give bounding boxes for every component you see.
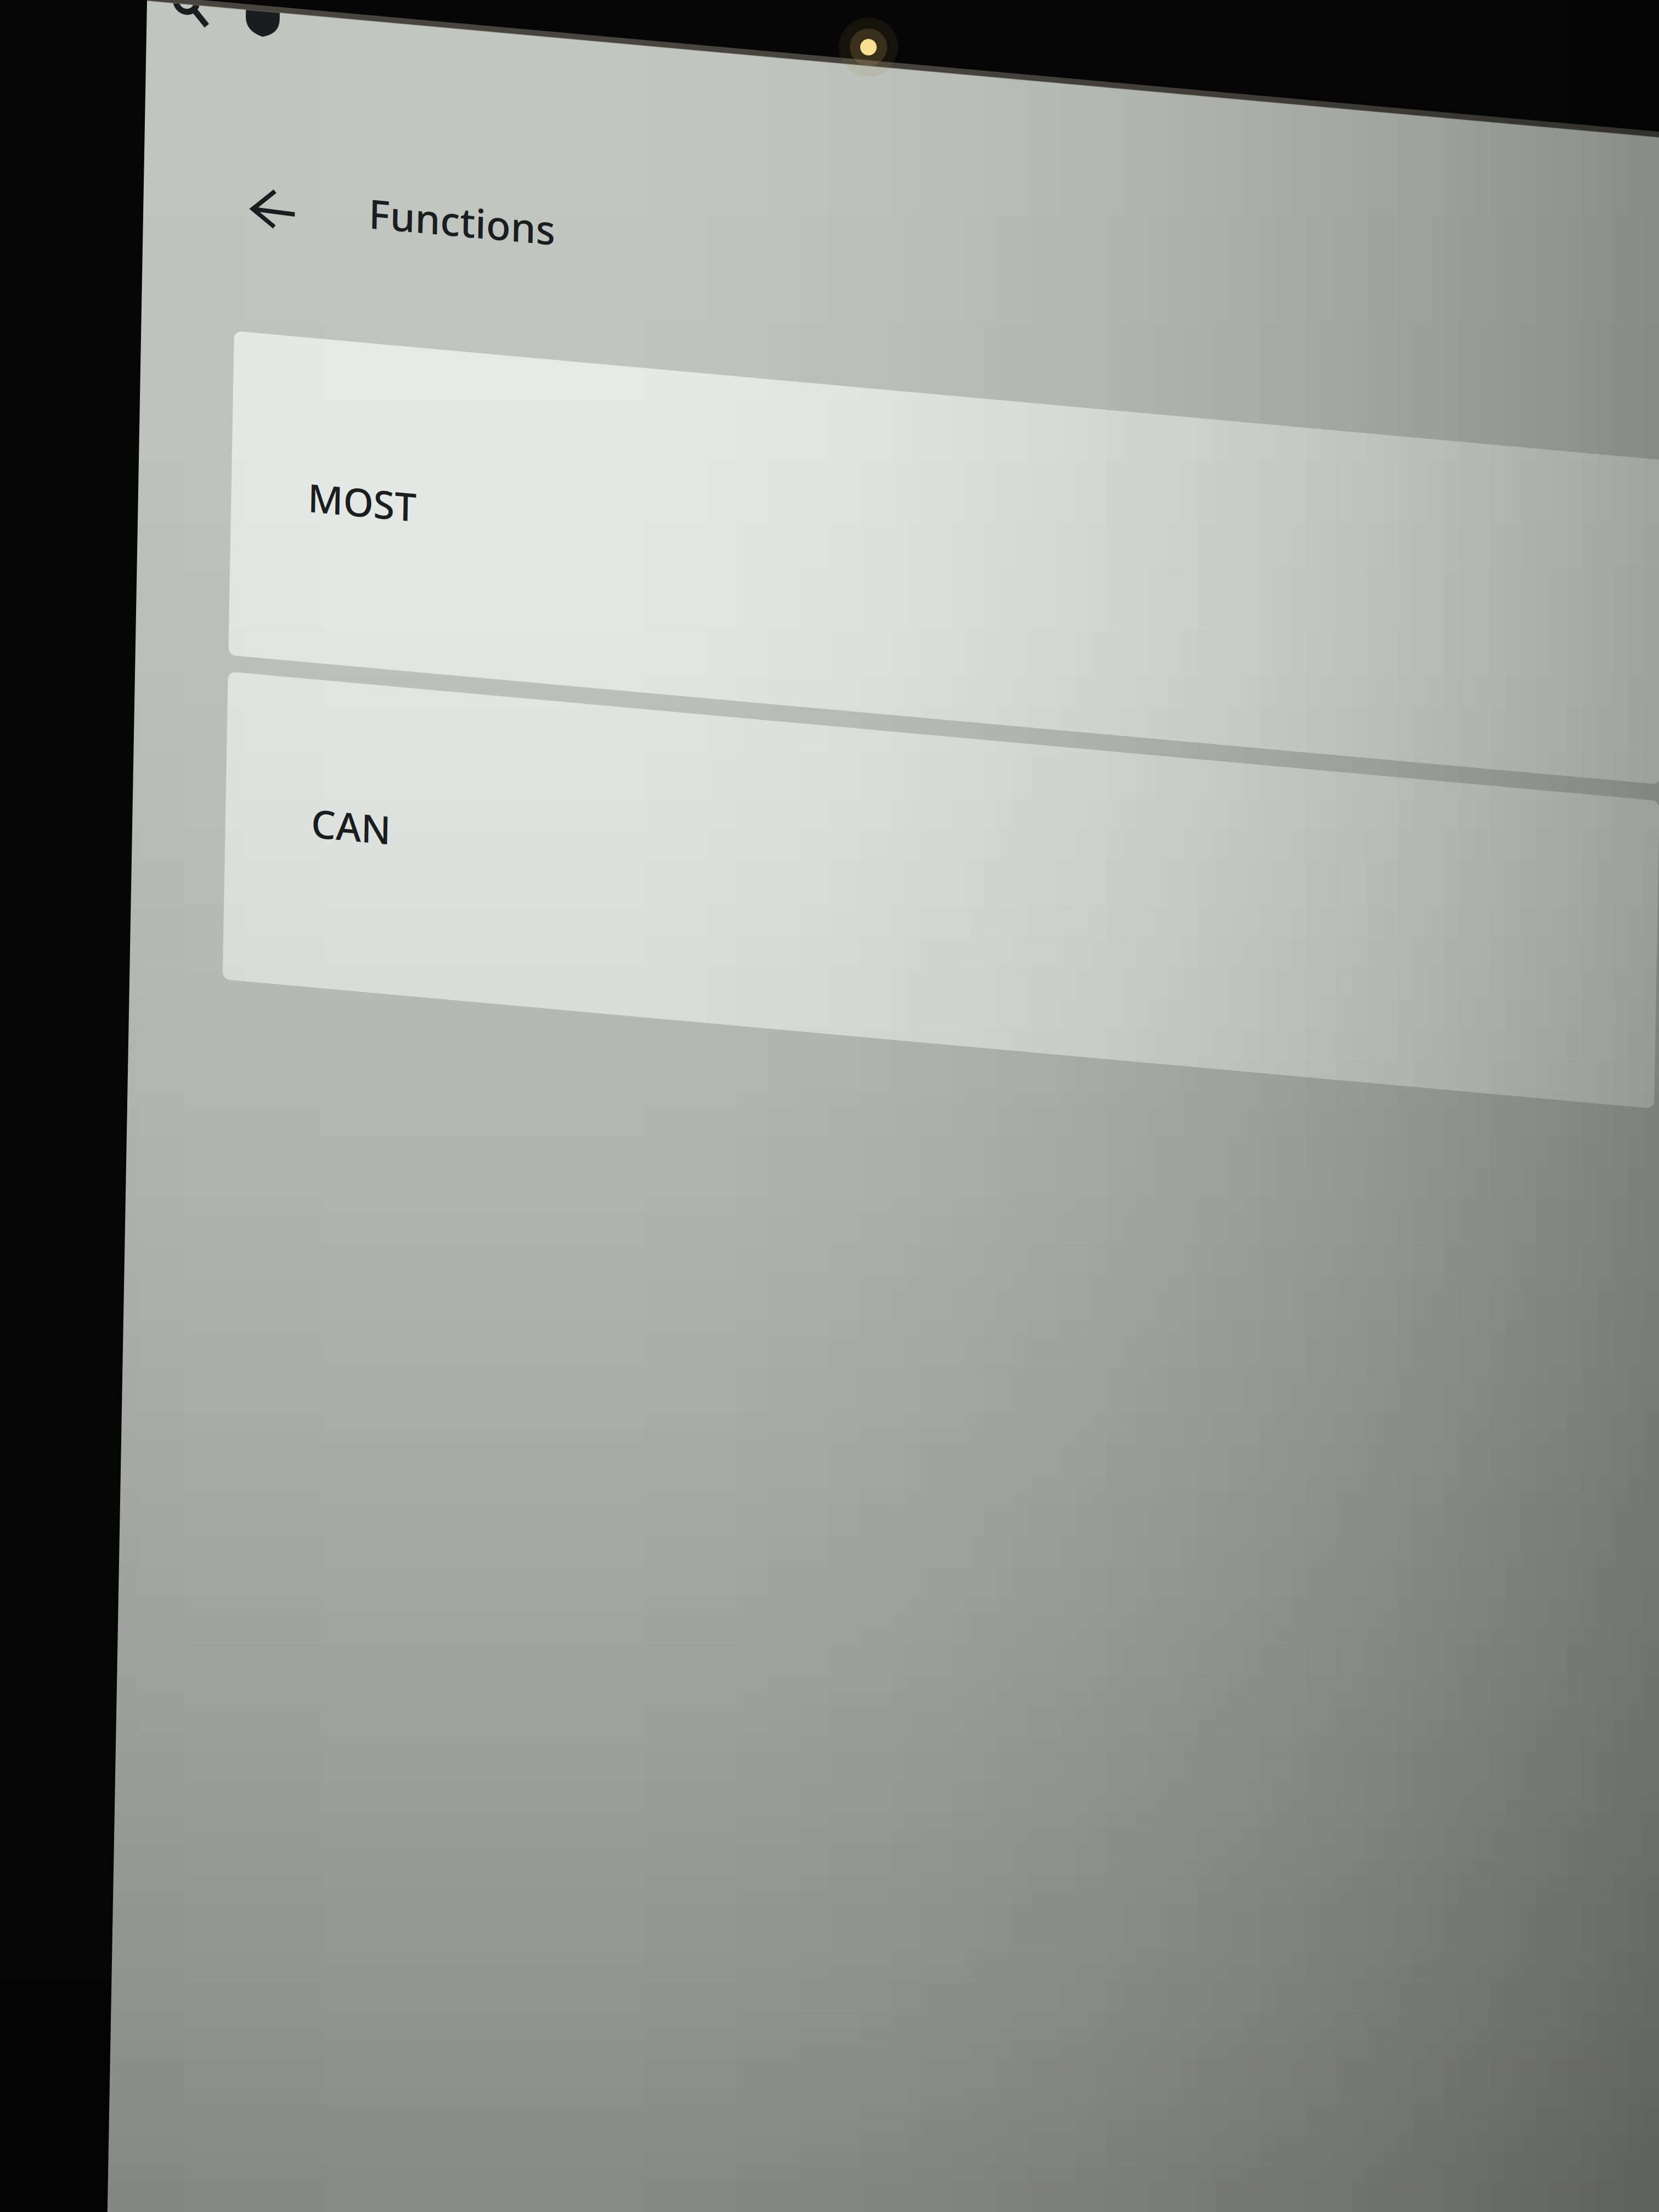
button[interactable]: CAN [93,663,1531,970]
button[interactable]: Navigate up [52,43,226,322]
staticText: Functions [226,165,414,219]
staticText: CAN [179,780,259,832]
button[interactable]: MOST [93,322,1531,646]
staticText: MOST [170,455,279,507]
button[interactable]: Security status [0,0,165,43]
